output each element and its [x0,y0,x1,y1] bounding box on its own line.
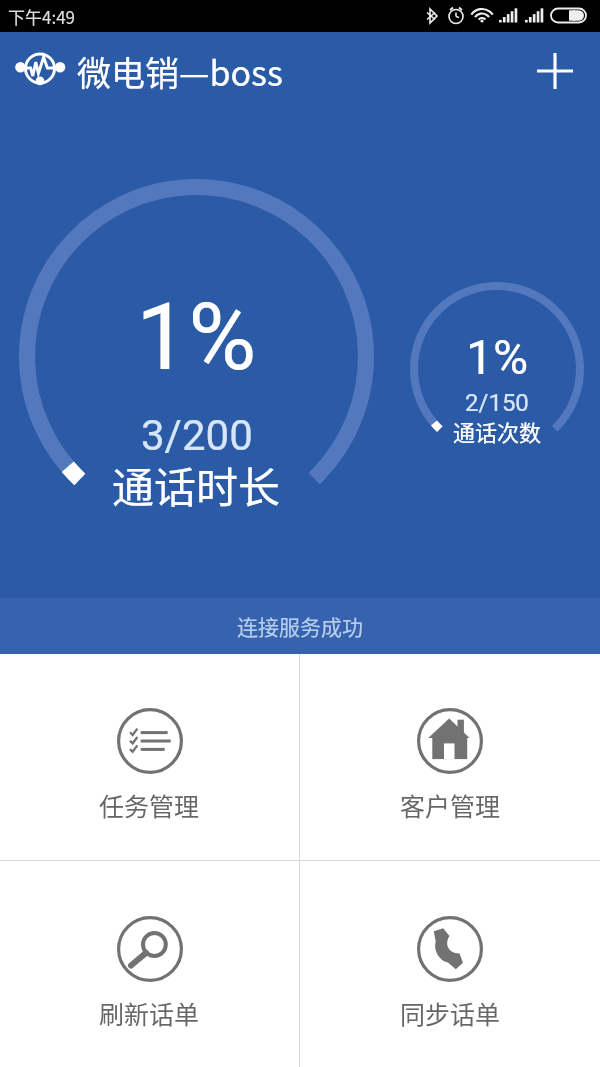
staticText: 2/150 [465,389,529,417]
staticText: 1% [136,283,257,392]
staticText: 通话时长 [112,454,281,515]
staticText: 3/200 [141,411,253,460]
button[interactable]: 客户管理 [300,654,600,860]
button[interactable]: Add [529,45,581,97]
staticText: 任务管理 [99,787,200,823]
staticText: 下午4:49 [8,4,76,29]
staticText: 连接服务成功 [237,611,363,641]
staticText: 同步话单 [400,995,501,1031]
button[interactable]: 刷新话单 [0,861,299,1067]
button[interactable]: 同步话单 [300,861,600,1067]
staticText: 微电销—boss [77,47,283,96]
staticText: 1% [466,329,529,385]
button[interactable]: 任务管理 [0,654,299,860]
staticText: 通话次数 [453,415,542,447]
staticText: 刷新话单 [99,995,200,1031]
staticText: 客户管理 [400,787,501,823]
